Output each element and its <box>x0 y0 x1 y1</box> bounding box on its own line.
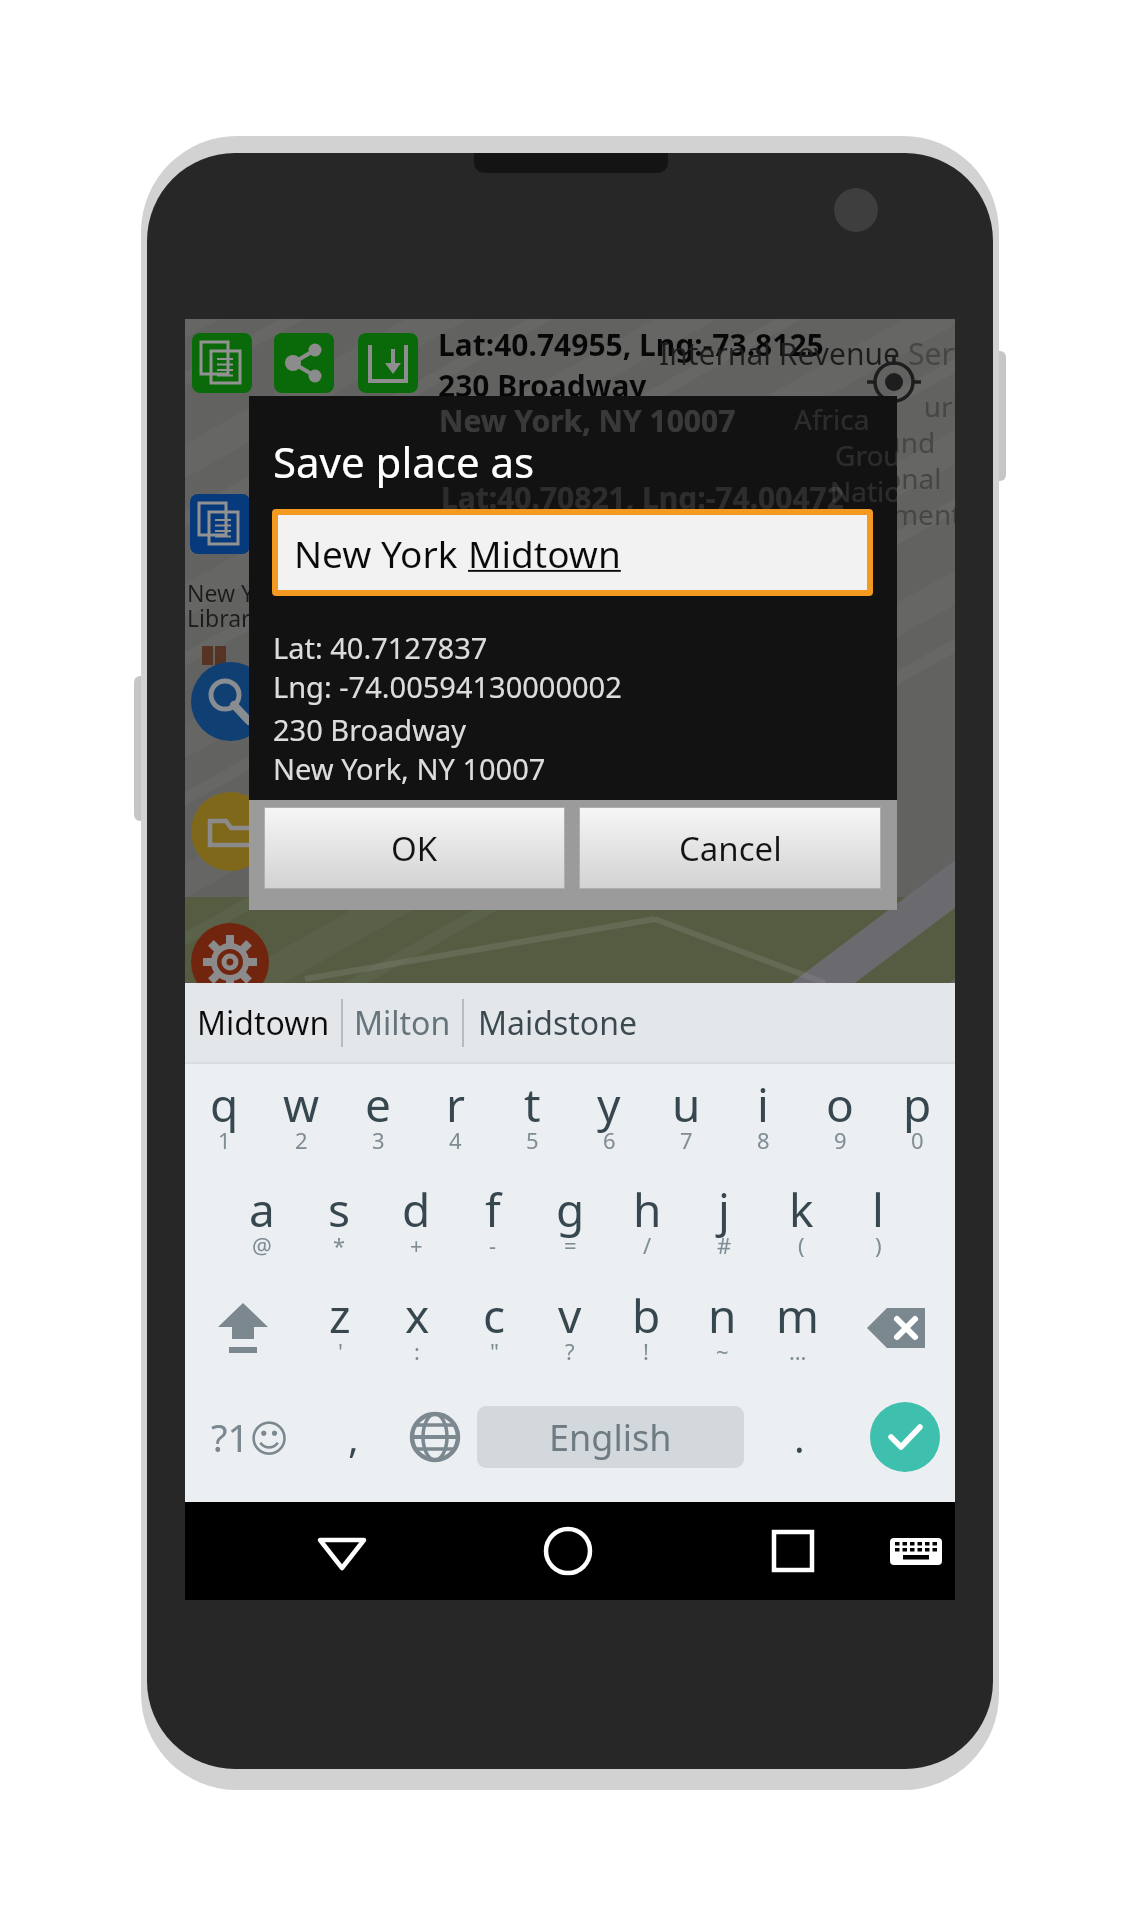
button[interactable]: Back <box>293 1502 391 1600</box>
staticText: 230 Broadway <box>438 365 647 406</box>
staticText: Bridge and DUMBO... <box>503 653 793 692</box>
staticText: Lat:40.70821, Lng:-74.00472 <box>441 477 844 509</box>
button[interactable]: t <box>493 1069 570 1165</box>
button[interactable]: Saved places <box>191 792 270 871</box>
button[interactable]: Save <box>358 333 418 393</box>
button[interactable]: , <box>315 1389 392 1485</box>
button[interactable]: Home <box>519 1502 617 1600</box>
button[interactable]: r <box>416 1069 493 1165</box>
staticText: Lat: 40.7127837 <box>273 628 488 667</box>
staticText: Maidstone <box>478 1001 637 1045</box>
button[interactable]: Settings <box>191 923 269 983</box>
staticText: ! <box>643 1336 649 1366</box>
button[interactable]: w <box>262 1069 339 1165</box>
staticText: x <box>405 1284 430 1347</box>
button[interactable]: g <box>531 1174 608 1270</box>
button[interactable]: k <box>762 1174 839 1270</box>
button[interactable]: p <box>878 1069 955 1165</box>
button[interactable]: x <box>378 1280 455 1376</box>
button[interactable]: u <box>647 1069 724 1165</box>
button[interactable]: s <box>300 1174 377 1270</box>
staticText: Africa <box>794 400 870 438</box>
staticText: c <box>483 1284 506 1347</box>
staticText: f <box>485 1178 501 1241</box>
staticText: Milton <box>354 1001 451 1045</box>
staticText: l <box>872 1178 884 1241</box>
button[interactable]: h <box>608 1174 685 1270</box>
button[interactable]: Backspace <box>836 1280 955 1376</box>
button[interactable]: n <box>684 1280 760 1376</box>
button[interactable]: Search <box>191 662 270 741</box>
button[interactable]: Copy all <box>192 333 252 393</box>
staticText: Lng: -74.00594130000002 <box>273 667 622 706</box>
staticText: 9 <box>834 1125 847 1155</box>
button[interactable]: e <box>339 1069 416 1165</box>
button[interactable]: Milton <box>343 983 462 1062</box>
staticText: a <box>249 1178 275 1241</box>
staticText: " <box>490 1336 499 1366</box>
button[interactable]: New York <box>278 515 867 590</box>
staticText: y <box>597 1073 621 1136</box>
staticText: New York <box>294 528 468 578</box>
button[interactable]: My location <box>862 350 926 414</box>
button[interactable]: z <box>301 1280 378 1376</box>
button[interactable]: Symbols and emoji <box>185 1389 315 1485</box>
staticText: 1 <box>218 1125 231 1155</box>
button[interactable]: Recents <box>744 1502 842 1600</box>
button[interactable]: Keyboard <box>867 1502 965 1600</box>
staticText: 230 Broadway <box>273 710 467 749</box>
staticText: b <box>632 1284 661 1347</box>
staticText: New York Public Library - New... <box>187 577 360 634</box>
staticText: ( <box>798 1230 805 1260</box>
button[interactable]: q <box>185 1069 262 1165</box>
button[interactable]: f <box>454 1174 531 1270</box>
button[interactable]: Midtown <box>185 983 341 1062</box>
staticText: ' <box>338 1336 343 1366</box>
button[interactable]: l <box>839 1174 916 1270</box>
button[interactable]: d <box>377 1174 454 1270</box>
button[interactable]: Shift <box>185 1280 301 1376</box>
staticText: s <box>328 1178 351 1241</box>
staticText: - <box>489 1230 497 1260</box>
button[interactable]: o <box>801 1069 878 1165</box>
staticText: Ground <box>835 436 897 474</box>
button[interactable]: c <box>455 1280 532 1376</box>
button[interactable]: m <box>760 1280 836 1376</box>
staticText: Monument <box>815 495 955 533</box>
staticText: v <box>558 1284 582 1347</box>
button[interactable]: j <box>685 1174 762 1270</box>
staticText: d <box>402 1178 431 1241</box>
button[interactable]: v <box>532 1280 608 1376</box>
button[interactable]: Cancel <box>579 807 881 889</box>
staticText: 3 <box>372 1125 385 1155</box>
button[interactable]: y <box>570 1069 647 1165</box>
button[interactable]: . <box>744 1389 854 1485</box>
button[interactable]: Switch language <box>392 1389 477 1485</box>
button[interactable]: Maidstone <box>464 983 650 1062</box>
staticText: . <box>794 1410 805 1464</box>
staticText: Cancel <box>679 826 782 871</box>
button[interactable]: b <box>608 1280 684 1376</box>
staticText: Ground <box>835 423 936 461</box>
button[interactable]: i <box>724 1069 801 1165</box>
staticText: Lat:40.74955, Lng:-73.8125 <box>438 324 824 365</box>
button[interactable]: Share <box>274 333 334 393</box>
staticText: OK <box>391 826 438 871</box>
staticText: k <box>789 1178 814 1241</box>
button[interactable]: English <box>477 1406 744 1468</box>
staticText: g <box>556 1178 585 1241</box>
staticText: z <box>329 1284 351 1347</box>
staticText: m <box>776 1284 820 1347</box>
button[interactable]: OK <box>264 807 565 889</box>
staticText: New York, NY 10007 <box>438 406 735 447</box>
staticText: e <box>365 1073 391 1136</box>
staticText: ?1☺ <box>211 1411 289 1463</box>
staticText: t <box>524 1073 541 1136</box>
button[interactable]: Enter <box>854 1389 955 1485</box>
staticText: @ <box>252 1230 272 1260</box>
staticText: / <box>643 1230 652 1260</box>
staticText: 7 <box>680 1125 693 1155</box>
button[interactable]: a <box>224 1174 300 1270</box>
button[interactable]: Copy <box>190 494 250 554</box>
